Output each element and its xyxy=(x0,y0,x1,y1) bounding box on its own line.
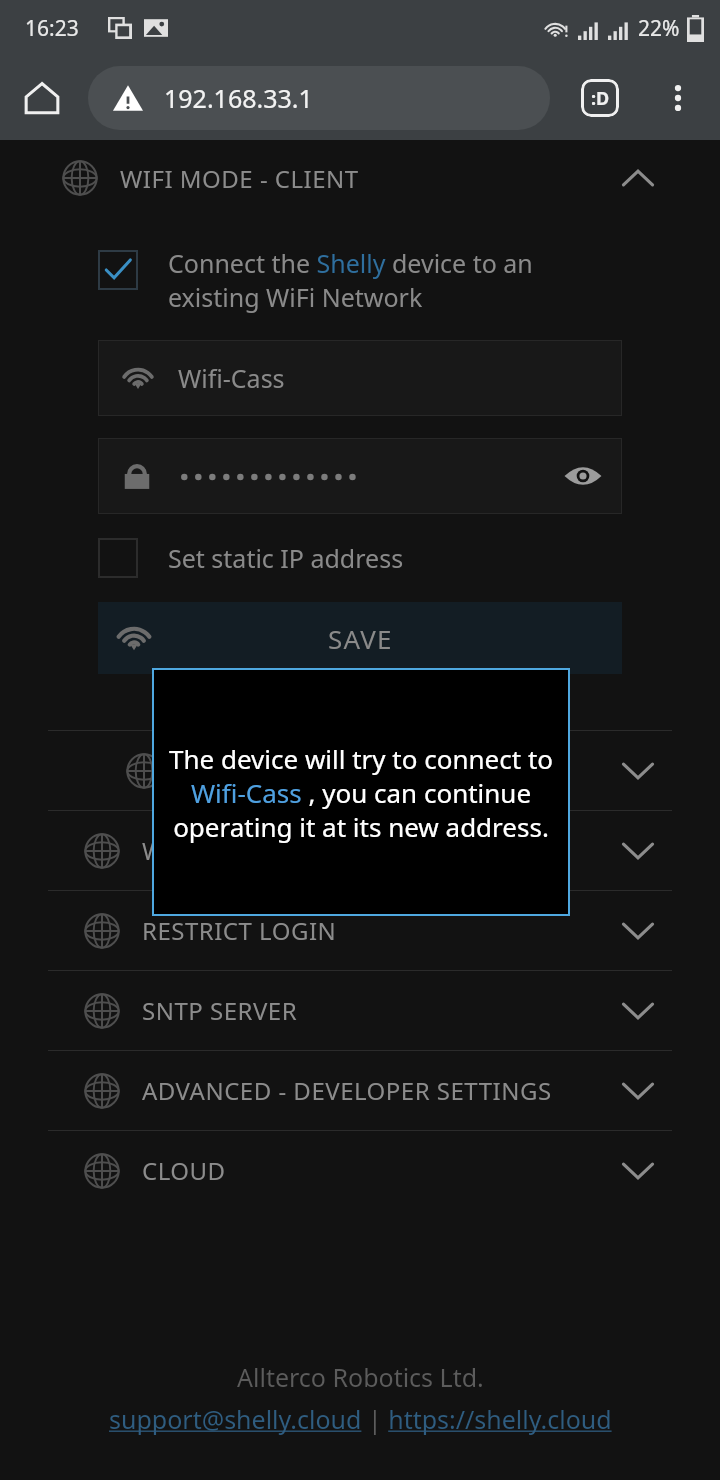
staticText: :D xyxy=(591,86,610,111)
staticText: SNTP SERVER xyxy=(142,994,298,1027)
button[interactable]: Show password xyxy=(558,451,608,501)
button[interactable]: More options xyxy=(650,70,706,126)
staticText: Connect the Shelly device to an existing… xyxy=(168,246,628,314)
staticText: 16:23 xyxy=(25,14,79,43)
button[interactable]: SAVE xyxy=(98,602,622,674)
staticText: Allterco Robotics Ltd. xyxy=(237,1360,484,1394)
staticText: 22% xyxy=(638,14,680,43)
button[interactable] xyxy=(0,731,720,810)
button[interactable]: ADVANCED - DEVELOPER SETTINGS xyxy=(0,1051,720,1130)
button[interactable]: Wifi-Cass xyxy=(98,340,622,416)
staticText: Set static IP address xyxy=(168,541,404,575)
button[interactable]: SNTP SERVER xyxy=(0,971,720,1050)
staticText: ADVANCED - DEVELOPER SETTINGS xyxy=(142,1074,552,1107)
button[interactable] xyxy=(98,438,622,514)
button[interactable]: CLOUD xyxy=(0,1131,720,1210)
button[interactable]: WIFI MODE - CLIENT xyxy=(0,146,720,210)
staticText: support@shelly.cloud | https://shelly.cl… xyxy=(109,1402,612,1436)
staticText: WIFI MODE - CLIENT xyxy=(120,162,359,195)
staticText: W xyxy=(142,834,165,867)
button[interactable]: Connect the Shelly device to an existing… xyxy=(98,246,628,314)
staticText: CLOUD xyxy=(142,1154,226,1187)
staticText: The device will try to connect to Wifi-C… xyxy=(168,741,554,844)
button[interactable]: Set static IP address xyxy=(98,538,720,578)
staticText: 192.168.33.1 xyxy=(164,81,313,115)
button[interactable]: Tabs xyxy=(570,68,630,128)
button[interactable]: Home xyxy=(12,68,72,128)
button[interactable]: 192.168.33.1 xyxy=(88,66,550,130)
button[interactable]: The device will try to connect to Wifi-C… xyxy=(152,668,570,916)
staticText: SAVE xyxy=(328,621,393,656)
button[interactable]: W xyxy=(0,811,720,890)
staticText: Wifi-Cass xyxy=(178,361,285,395)
button[interactable]: RESTRICT LOGIN xyxy=(0,891,720,970)
staticText: RESTRICT LOGIN xyxy=(142,914,337,947)
